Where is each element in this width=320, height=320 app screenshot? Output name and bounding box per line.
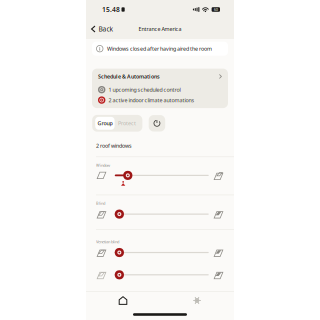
staticText: 2 active indoor climate automations: [109, 96, 195, 104]
staticText: 60: [214, 7, 218, 12]
staticText: 2 roof windows: [96, 142, 132, 149]
staticText: 1 upcoming scheduled control: [109, 86, 181, 93]
button[interactable]: Home: [86, 292, 160, 309]
button[interactable]: Schedule & Automations: [92, 69, 228, 108]
staticText: Window: [96, 163, 110, 168]
staticText: Windows closed after having aired the ro…: [107, 45, 212, 52]
staticText: 15.48: [102, 5, 120, 14]
button[interactable]: Refresh: [149, 115, 165, 131]
button[interactable]: Group: [95, 117, 115, 130]
staticText: Venetian blind: [96, 239, 119, 244]
staticText: Protect: [118, 120, 136, 127]
staticText: Back: [99, 25, 114, 33]
button[interactable]: Settings: [160, 292, 234, 309]
button[interactable]: Protect: [115, 117, 139, 130]
staticText: Group: [97, 120, 112, 127]
staticText: Entrance America: [138, 25, 181, 33]
staticText: Blind: [96, 201, 105, 206]
button[interactable]: Back: [87, 22, 118, 36]
staticText: Schedule & Automations: [98, 73, 160, 80]
